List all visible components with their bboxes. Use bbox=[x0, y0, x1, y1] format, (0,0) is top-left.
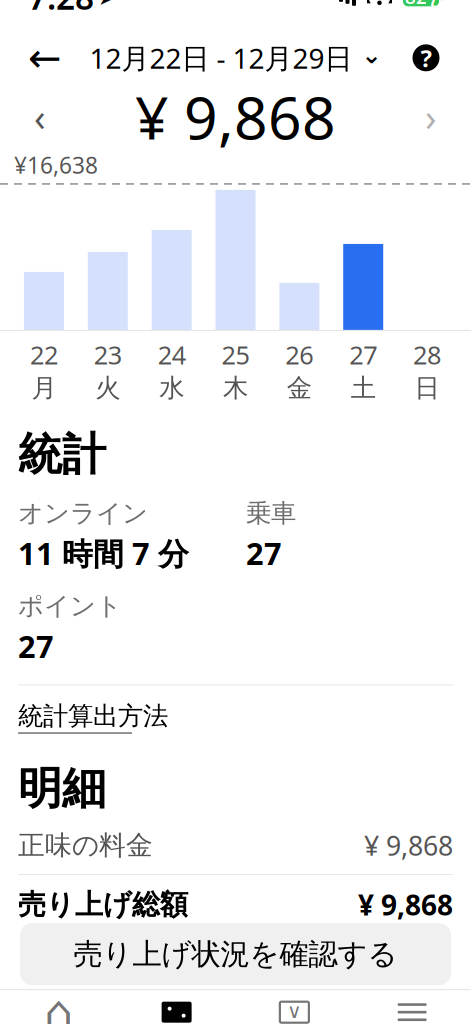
button[interactable]: 統計算出方法 bbox=[18, 700, 168, 733]
staticText: 24 bbox=[158, 338, 186, 371]
button[interactable]: ⌂ bbox=[0, 999, 118, 1024]
staticText: ‹ bbox=[34, 92, 46, 142]
staticText: ¥ 9,868 bbox=[135, 78, 336, 156]
staticText: 7:28 bbox=[28, 0, 94, 19]
staticText: 乗車 bbox=[246, 498, 296, 529]
button[interactable]: 戻る bbox=[18, 31, 72, 85]
staticText: 月 bbox=[31, 373, 56, 404]
staticText: 25 bbox=[221, 338, 249, 371]
button[interactable]: 前の週 bbox=[18, 91, 62, 143]
staticText: オンライン bbox=[18, 498, 148, 529]
button[interactable]: 次の週 bbox=[409, 91, 453, 143]
staticText: 11 時間 7 分 bbox=[18, 533, 189, 573]
button[interactable]: ∨ bbox=[235, 999, 353, 1024]
staticText: ¥16,638 bbox=[14, 150, 98, 180]
staticText: 金 bbox=[287, 373, 312, 404]
staticText: ⌂ bbox=[44, 986, 73, 1024]
staticText: ¥ 9,868 bbox=[358, 886, 453, 923]
staticText: ← bbox=[28, 35, 62, 80]
staticText: 水 bbox=[159, 373, 184, 404]
staticText: ϟ bbox=[427, 0, 437, 8]
staticText: 28 bbox=[413, 338, 441, 371]
staticText: 統計算出方法 bbox=[18, 700, 168, 731]
staticText: 27 bbox=[349, 338, 377, 371]
staticText: 統計 bbox=[18, 428, 106, 482]
staticText: 26 bbox=[285, 338, 313, 371]
button[interactable]: 売り上げ状況を確認する bbox=[20, 923, 451, 985]
staticText: 売り上げ状況を確認する bbox=[73, 936, 397, 972]
button[interactable]: 12月22日 - 12月29日 bbox=[89, 31, 381, 85]
staticText: 正味の料金 bbox=[18, 829, 153, 862]
staticText: 明細 bbox=[18, 761, 106, 815]
staticText: ∨ bbox=[287, 1000, 302, 1022]
staticText: 売り上げ総額 bbox=[18, 887, 188, 922]
staticText: 火 bbox=[95, 373, 120, 404]
staticText: 土 bbox=[351, 373, 376, 404]
staticText: 12月22日 - 12月29日 bbox=[89, 39, 352, 76]
staticText: 木 bbox=[223, 373, 248, 404]
staticText: 82 bbox=[405, 0, 427, 9]
staticText: ¥ 9,868 bbox=[364, 828, 453, 863]
button[interactable]: メニュー bbox=[353, 999, 471, 1024]
button[interactable]: 売り上げ bbox=[118, 999, 235, 1024]
staticText: 日 bbox=[415, 373, 440, 404]
staticText: 27 bbox=[246, 533, 282, 573]
staticText: ポイント bbox=[18, 591, 122, 622]
staticText: ⌄ bbox=[361, 41, 381, 68]
button[interactable]: ヘルプ bbox=[399, 31, 453, 85]
staticText: › bbox=[425, 92, 437, 142]
staticText: 27 bbox=[18, 626, 54, 666]
staticText: 22 bbox=[30, 338, 58, 371]
staticText: 23 bbox=[94, 338, 122, 371]
staticText: ➤ bbox=[98, 0, 117, 10]
staticText: ? bbox=[420, 42, 431, 74]
